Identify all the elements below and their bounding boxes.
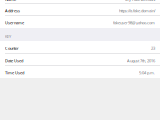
staticText: Date Used	[5, 58, 23, 63]
staticText: Counter	[5, 45, 19, 51]
staticText: Name	[5, 0, 16, 2]
button[interactable]: Counter	[0, 41, 160, 54]
button[interactable]: Name	[0, 0, 160, 4]
staticText: 23	[151, 45, 155, 51]
button[interactable]: Address	[0, 4, 160, 16]
staticText: https://a.fake.domain/	[119, 8, 155, 13]
staticText: Time Used	[5, 70, 24, 75]
button[interactable]: Date Used	[0, 54, 160, 66]
staticText: 5:04 p.m.	[139, 70, 155, 75]
staticText: Address	[5, 8, 20, 13]
staticText: August 7th, 2016	[127, 58, 155, 63]
staticText: Username	[5, 20, 24, 25]
button[interactable]: Time Used	[0, 66, 160, 78]
staticText: KEY	[5, 34, 11, 39]
button[interactable]: Username	[0, 16, 160, 28]
staticText: fakeuser98@yahoo.com	[113, 20, 155, 25]
staticText: My Fake Account	[125, 0, 155, 2]
